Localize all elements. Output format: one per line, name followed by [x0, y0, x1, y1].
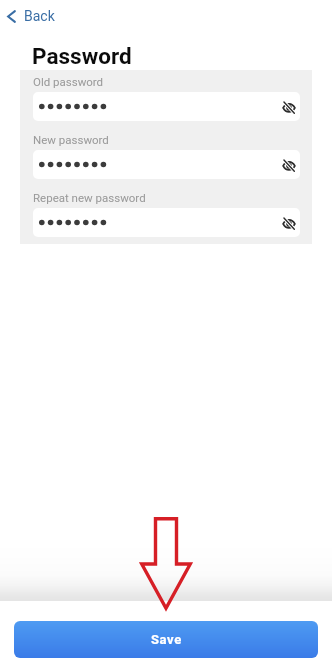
- button[interactable]: Show password: [33, 150, 300, 179]
- staticText: Password: [32, 43, 132, 69]
- staticText: Save: [151, 632, 182, 647]
- staticText: New password: [33, 133, 109, 146]
- staticText: Back: [24, 8, 55, 24]
- staticText: Old password: [33, 75, 104, 88]
- button[interactable]: Save: [14, 621, 318, 658]
- button[interactable]: Show password: [277, 211, 300, 234]
- button[interactable]: Show password: [33, 208, 300, 237]
- button[interactable]: Show password: [277, 153, 300, 176]
- button[interactable]: Show password: [277, 95, 300, 118]
- button[interactable]: Show password: [33, 92, 300, 121]
- button[interactable]: Back: [0, 3, 55, 29]
- staticText: Repeat new password: [33, 191, 146, 204]
